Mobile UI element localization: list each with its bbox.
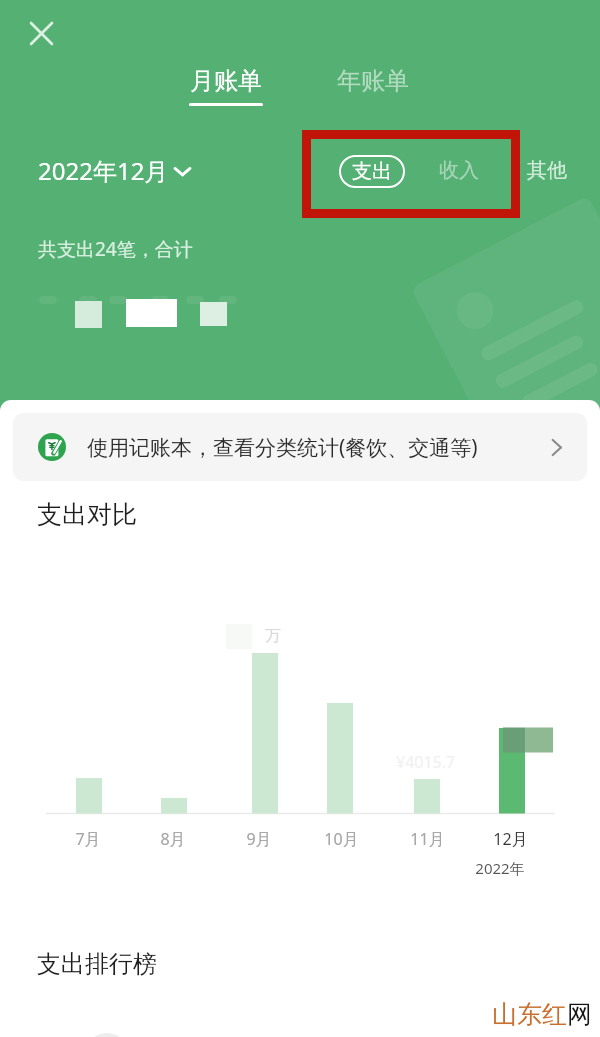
staticText: 10月 (324, 828, 359, 850)
staticText: 2022年12月 (38, 154, 169, 187)
staticText: 其他 (527, 158, 567, 183)
staticText: 7月 (75, 828, 101, 850)
button[interactable]: 2022年12月 (32, 150, 197, 191)
button[interactable]: 年账单 (337, 66, 409, 96)
staticText: 万 (265, 626, 281, 646)
button[interactable]: 支出 (339, 155, 405, 188)
button[interactable]: 收入 (433, 152, 485, 189)
staticText: 月账单 (190, 66, 262, 96)
staticText: 山东红 (492, 999, 567, 1030)
staticText: 9月 (246, 828, 272, 850)
staticText: 共支出24笔，合计 (38, 236, 193, 262)
staticText: 11月 (410, 828, 445, 850)
button[interactable]: Close (24, 16, 58, 50)
button[interactable]: 其他 (521, 152, 573, 189)
staticText: 12月 (493, 828, 528, 850)
button[interactable]: 月账单 (190, 66, 262, 96)
staticText: 支出 (352, 159, 392, 184)
staticText: ¥4015.7 (396, 751, 456, 773)
staticText: 使用记账本，查看分类统计(餐饮、交通等) (87, 433, 478, 462)
staticText: 年账单 (337, 66, 409, 96)
staticText: 支出排行榜 (37, 949, 157, 979)
staticText: 2022年 (475, 858, 525, 878)
staticText: 支出对比 (37, 499, 137, 530)
staticText: 网 (567, 999, 592, 1030)
staticText: 收入 (439, 158, 479, 183)
button[interactable]: 使用记账本，查看分类统计(餐饮、交通等) (13, 413, 587, 481)
staticText: 8月 (160, 828, 186, 850)
